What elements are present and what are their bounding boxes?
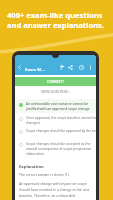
button[interactable]: Scope changes should be approved by the … — [15, 126, 96, 139]
staticText: Exam M... — [25, 66, 45, 72]
staticText: 400+ exam-like questions — [7, 10, 103, 20]
staticText: An approved change with impact on scope … — [19, 181, 95, 198]
button[interactable]: Scope changes should be accepted as the … — [15, 139, 96, 157]
button[interactable]: An unfavorable cost variance cannot be j… — [15, 99, 96, 113]
staticText: VIEW QUESTION › — [41, 89, 71, 94]
staticText: Once approved, the scope baseline cannot… — [26, 115, 96, 125]
button[interactable]: Timer — [77, 63, 85, 71]
button[interactable]: VIEW QUESTION › — [15, 88, 96, 95]
staticText: An unfavorable cost variance cannot be j… — [26, 101, 96, 111]
button[interactable]: More options — [86, 63, 94, 71]
button[interactable]: Share — [66, 63, 74, 71]
button[interactable]: Back — [15, 63, 23, 71]
staticText: CORRECT! — [47, 79, 64, 84]
staticText: Scope changes should be accepted as the … — [26, 141, 96, 156]
button[interactable]: Once approved, the scope baseline cannot… — [15, 113, 96, 126]
staticText: The correct answer is choice (1). — [19, 172, 70, 177]
staticText: Explanation — [19, 164, 44, 170]
staticText: Scope changes should be approved by the … — [26, 128, 96, 132]
button[interactable]: Flag question — [58, 63, 66, 71]
staticText: and answer explanations. — [7, 20, 105, 30]
